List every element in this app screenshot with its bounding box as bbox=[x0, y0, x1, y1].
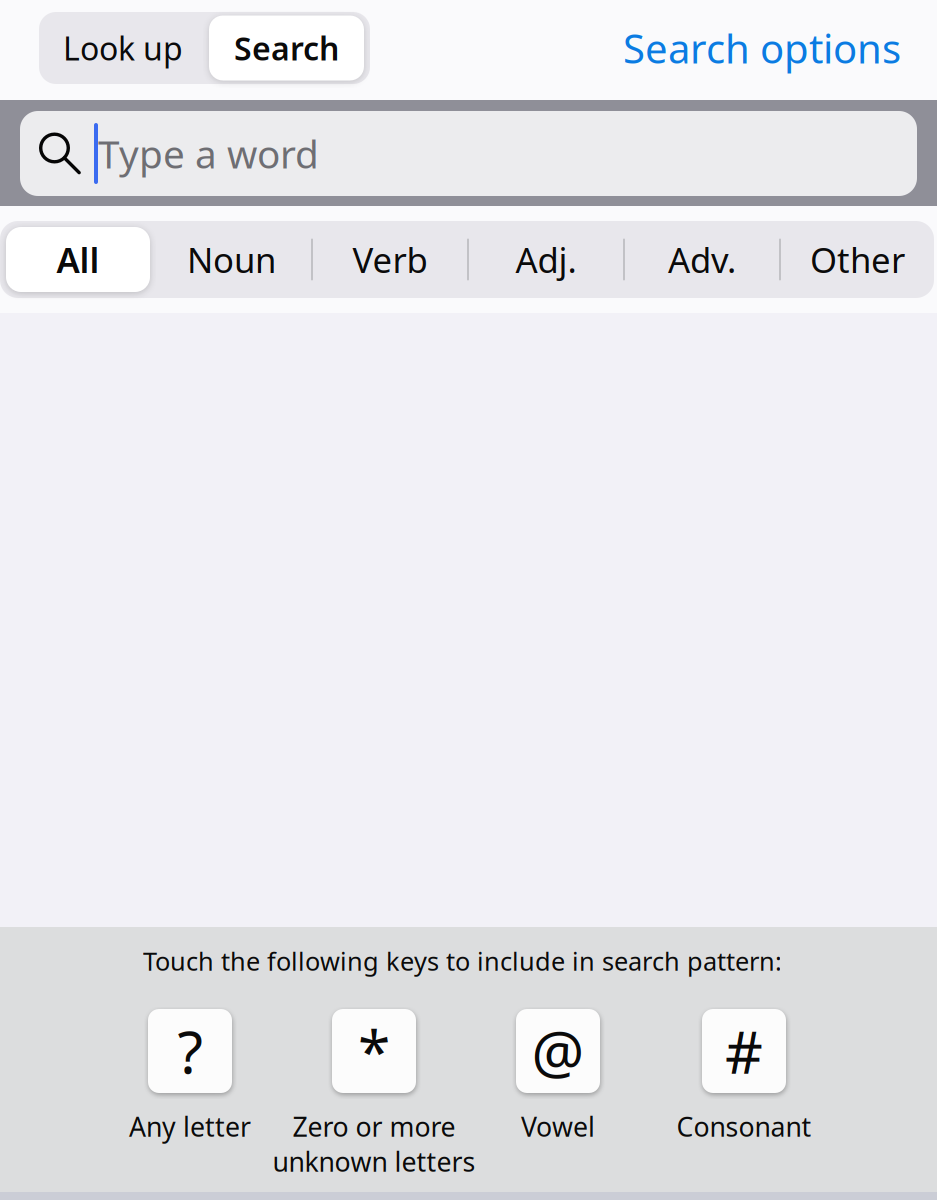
staticText: ? bbox=[177, 1012, 202, 1090]
button[interactable]: All bbox=[6, 227, 150, 292]
staticText: Noun bbox=[187, 236, 276, 282]
button[interactable]: Zero or more unknown letters wildcard bbox=[224, 1009, 524, 1194]
staticText: # bbox=[725, 1012, 763, 1090]
staticText: Consonant bbox=[676, 1109, 811, 1144]
button[interactable]: Search bbox=[209, 12, 372, 84]
button[interactable]: Verb bbox=[313, 221, 467, 298]
staticText: Other bbox=[810, 236, 905, 282]
staticText: @ bbox=[531, 1012, 584, 1090]
staticText: Touch the following keys to include in s… bbox=[143, 944, 782, 978]
staticText: Zero or more bbox=[292, 1109, 455, 1144]
staticText: Type a word bbox=[98, 128, 319, 179]
button[interactable]: Vowel wildcard bbox=[408, 1009, 708, 1194]
button[interactable]: Adv. bbox=[625, 221, 779, 298]
button[interactable]: Adj. bbox=[469, 221, 623, 298]
staticText: Vowel bbox=[521, 1109, 595, 1144]
staticText: Adj. bbox=[515, 236, 576, 282]
staticText: Search options bbox=[623, 21, 901, 74]
button[interactable]: Search field, Type a word bbox=[20, 111, 917, 196]
button[interactable]: Consonant wildcard bbox=[594, 1009, 894, 1194]
staticText: Any letter bbox=[129, 1109, 251, 1144]
staticText: Search bbox=[234, 27, 339, 69]
button[interactable]: Other bbox=[781, 221, 934, 298]
staticText: * bbox=[358, 1012, 390, 1090]
button[interactable]: Look up bbox=[37, 12, 209, 84]
button[interactable]: Any letter wildcard bbox=[40, 1009, 340, 1194]
button[interactable]: Search options bbox=[621, 12, 901, 84]
staticText: All bbox=[56, 236, 99, 282]
staticText: unknown letters bbox=[272, 1144, 475, 1179]
button[interactable]: Noun bbox=[152, 221, 311, 298]
staticText: Adv. bbox=[668, 236, 736, 282]
staticText: Look up bbox=[63, 27, 183, 69]
staticText: Verb bbox=[352, 236, 427, 282]
